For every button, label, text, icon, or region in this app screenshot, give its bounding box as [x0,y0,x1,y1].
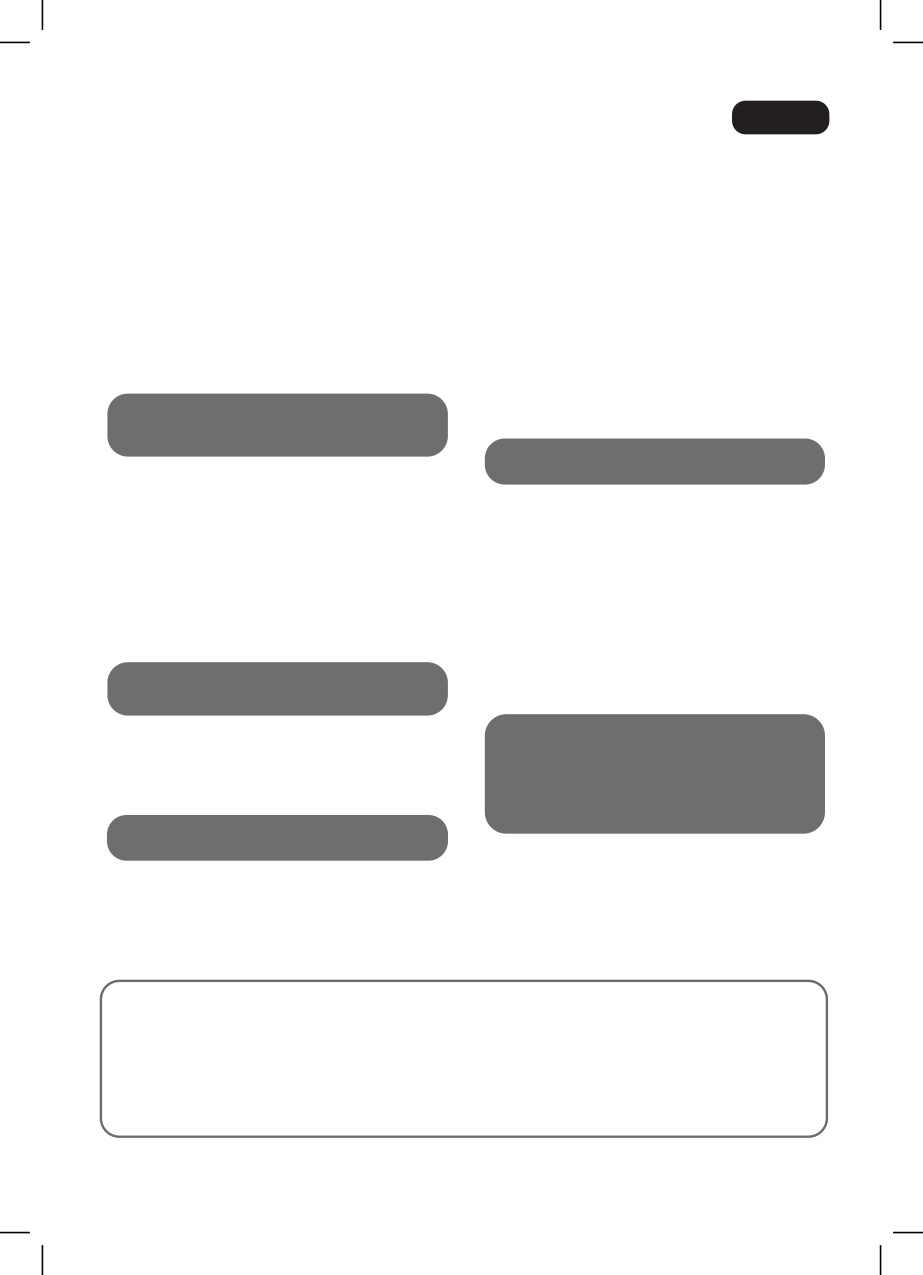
button[interactable]: Tag [732,101,829,134]
